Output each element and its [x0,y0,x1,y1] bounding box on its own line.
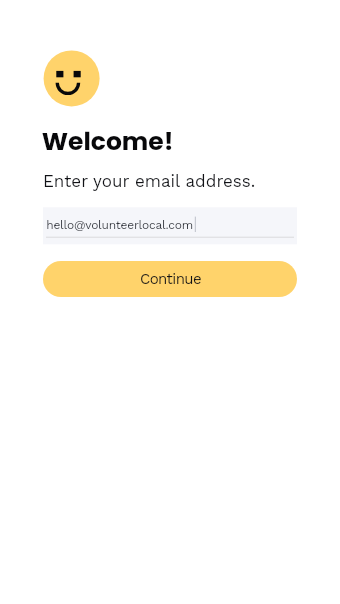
button[interactable]: VolunteerLocal logo [43,50,99,106]
staticText: Continue [140,270,201,288]
staticText: Welcome! [42,124,174,159]
staticText: Enter your email address. [43,171,256,191]
button[interactable]: Email address input [43,207,297,244]
button[interactable]: Continue [43,261,297,297]
staticText: hello@volunteerlocal.com [46,218,193,232]
